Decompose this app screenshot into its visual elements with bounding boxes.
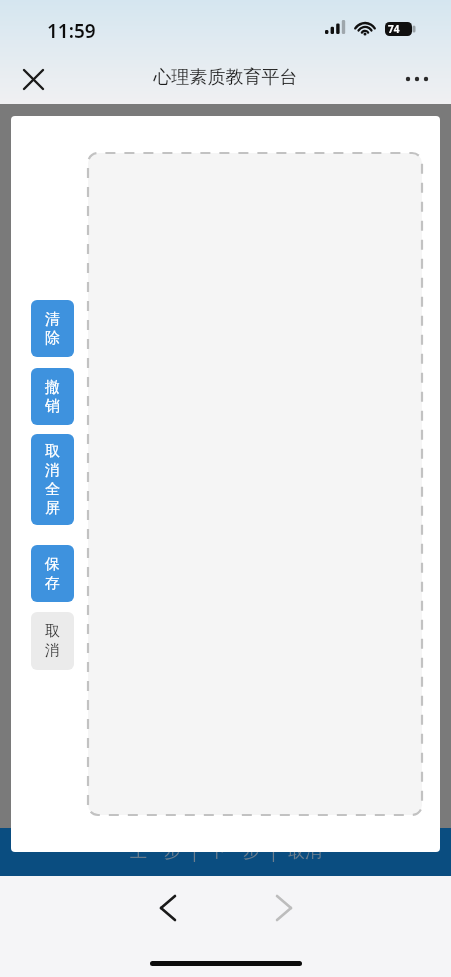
staticText: 74 [388, 22, 400, 36]
staticText: | [181, 840, 209, 863]
staticText: 清 [45, 310, 60, 329]
staticText: 心理素质教育平台 [0, 66, 451, 89]
button[interactable]: 取 [31, 612, 74, 670]
button[interactable]: 撤 [31, 368, 74, 425]
button[interactable]: 取 [31, 434, 74, 525]
staticText: 消 [45, 461, 60, 480]
staticText: 屏 [45, 499, 60, 518]
staticText: 取 [45, 442, 60, 461]
staticText: | [260, 840, 288, 863]
staticText: 取消 [288, 841, 322, 862]
staticText: 撤 [45, 378, 60, 397]
staticText: 保 [45, 555, 60, 574]
staticText: 下一步 [209, 841, 260, 862]
staticText: 上一步 [130, 841, 181, 862]
staticText: 销 [45, 397, 60, 416]
button[interactable]: Close [14, 60, 52, 98]
staticText: 消 [45, 641, 60, 660]
button[interactable]: More options [398, 60, 436, 98]
button[interactable]: Forward [262, 886, 306, 930]
staticText: 全 [45, 480, 60, 499]
staticText: 11:59 [47, 18, 96, 44]
staticText: 存 [45, 574, 60, 593]
button[interactable]: 清 [31, 300, 74, 357]
staticText: 除 [45, 329, 60, 348]
button[interactable]: Back [146, 886, 190, 930]
staticText: 取 [45, 622, 60, 641]
button[interactable]: 保 [31, 545, 74, 602]
